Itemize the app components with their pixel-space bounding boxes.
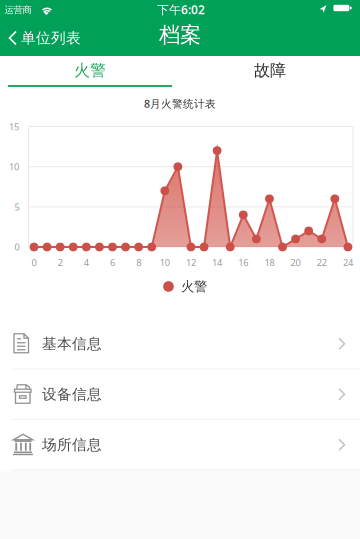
button[interactable]: 基本信息 [0,319,360,368]
staticText: 4 [84,256,89,269]
button[interactable]: 火警 [0,56,180,85]
staticText: 5 [14,201,19,213]
staticText: 场所信息 [42,436,102,454]
staticText: 20 [291,256,301,269]
button[interactable]: 单位列表 [0,20,81,56]
staticText: 火警 [181,278,207,295]
staticText: 故障 [254,61,286,80]
button[interactable]: 设备信息 [0,369,360,419]
staticText: 下午6:02 [157,1,205,17]
staticText: 2 [58,256,63,269]
staticText: 16 [238,256,248,269]
staticText: 6 [110,256,115,269]
staticText: 0 [14,241,19,253]
staticText: 15 [9,120,19,133]
staticText: 0 [31,256,36,269]
staticText: 22 [317,256,327,269]
staticText: 运营商 [4,4,31,16]
staticText: 10 [9,160,19,173]
staticText: 24 [343,256,353,269]
staticText: 火警 [74,61,106,80]
staticText: 单位列表 [21,29,81,47]
staticText: 18 [264,256,274,269]
button[interactable]: 场所信息 [0,420,360,469]
staticText: 12 [186,256,196,269]
staticText: 档案 [159,22,201,48]
button[interactable]: 故障 [180,56,360,85]
staticText: 设备信息 [42,385,102,403]
staticText: 基本信息 [42,335,102,353]
staticText: 10 [160,256,170,269]
staticText: 8月火警统计表 [144,96,216,111]
staticText: 14 [212,256,222,269]
staticText: 8 [136,256,141,269]
